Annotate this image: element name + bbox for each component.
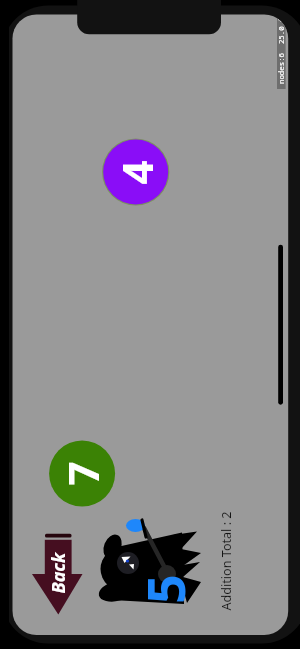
button[interactable]: Bubble 7 xyxy=(49,440,115,506)
button[interactable]: Bubble 4 xyxy=(103,139,169,205)
button[interactable]: Creature 5 xyxy=(100,517,201,605)
button[interactable]: Back xyxy=(30,531,86,615)
